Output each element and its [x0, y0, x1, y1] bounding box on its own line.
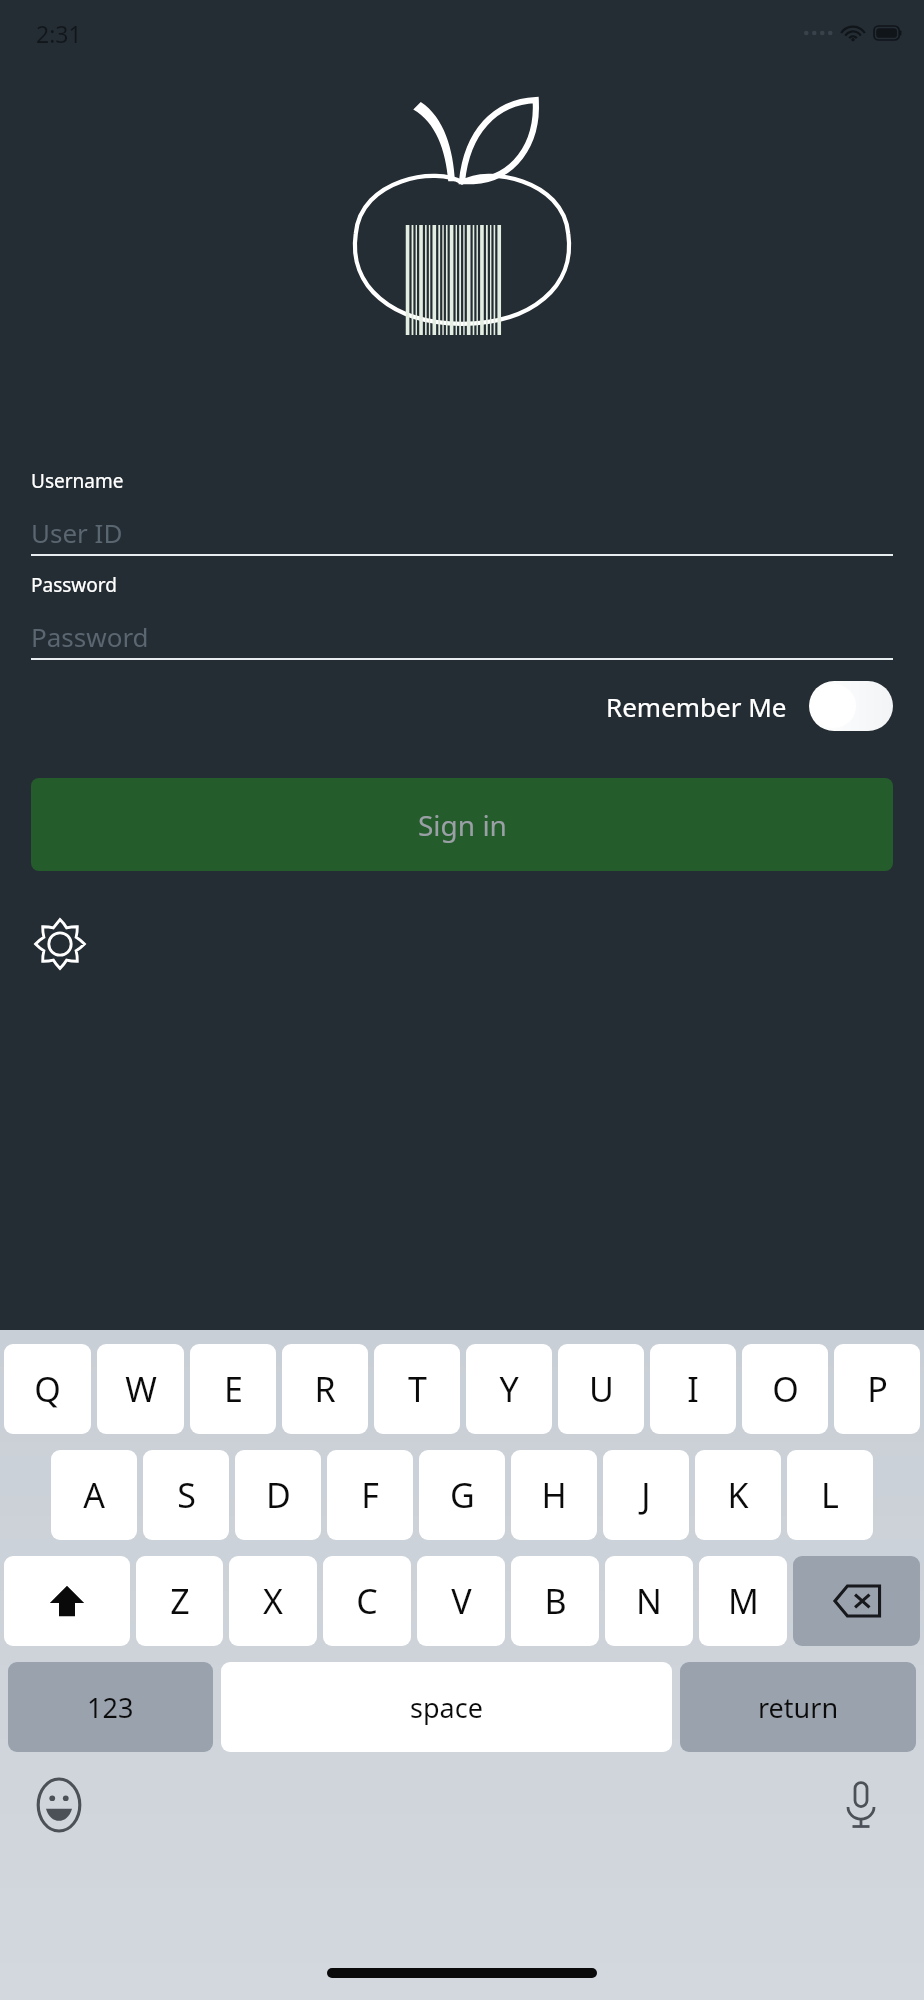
button[interactable]: U	[558, 1344, 644, 1434]
button[interactable]: User ID	[31, 510, 893, 554]
staticText: I	[687, 1366, 699, 1412]
staticText: D	[266, 1472, 291, 1518]
button[interactable]: L	[787, 1450, 873, 1540]
staticText: Sign in	[418, 806, 507, 844]
button[interactable]: Sign in	[31, 778, 893, 871]
button[interactable]: H	[511, 1450, 597, 1540]
button[interactable]: S	[143, 1450, 229, 1540]
button[interactable]: X	[229, 1556, 317, 1646]
staticText: W	[125, 1366, 157, 1412]
button[interactable]: E	[190, 1344, 276, 1434]
staticText: O	[772, 1366, 799, 1412]
staticText: 123	[87, 1689, 134, 1726]
staticText: E	[224, 1366, 243, 1412]
staticText: B	[544, 1578, 567, 1624]
button[interactable]: Q	[4, 1344, 91, 1434]
button[interactable]: I	[650, 1344, 736, 1434]
staticText: 2:31	[36, 18, 82, 49]
button[interactable]: J	[603, 1450, 689, 1540]
button[interactable]: W	[97, 1344, 184, 1434]
staticText: Password	[31, 572, 117, 598]
button[interactable]: R	[282, 1344, 368, 1434]
button[interactable]: Dictation	[832, 1776, 890, 1834]
staticText: J	[641, 1472, 651, 1518]
staticText: Remember Me	[606, 689, 787, 724]
staticText: A	[83, 1472, 105, 1518]
button[interactable]: return	[680, 1662, 916, 1752]
staticText: Z	[170, 1578, 190, 1624]
button[interactable]: space	[221, 1662, 672, 1752]
button[interactable]: A	[51, 1450, 137, 1540]
button[interactable]: P	[834, 1344, 920, 1434]
staticText: U	[589, 1366, 614, 1412]
button[interactable]: Backspace	[793, 1556, 920, 1646]
staticText: N	[636, 1578, 662, 1624]
button[interactable]: Settings	[31, 915, 89, 973]
staticText: return	[758, 1689, 839, 1726]
button[interactable]: Z	[136, 1556, 223, 1646]
button[interactable]: K	[695, 1450, 781, 1540]
staticText: F	[361, 1472, 379, 1518]
button[interactable]: F	[327, 1450, 413, 1540]
staticText: H	[541, 1472, 567, 1518]
staticText: Q	[34, 1366, 61, 1412]
staticText: C	[356, 1578, 378, 1624]
button[interactable]: Password	[31, 614, 893, 658]
button[interactable]: V	[417, 1556, 505, 1646]
staticText: X	[263, 1578, 283, 1624]
staticText: Y	[499, 1366, 519, 1412]
staticText: V	[451, 1578, 472, 1624]
staticText: User ID	[31, 515, 123, 550]
staticText: P	[867, 1366, 888, 1412]
staticText: Username	[31, 468, 124, 494]
button[interactable]: C	[323, 1556, 411, 1646]
button[interactable]: G	[419, 1450, 505, 1540]
button[interactable]: O	[742, 1344, 828, 1434]
button[interactable]: B	[511, 1556, 599, 1646]
staticText: K	[727, 1472, 749, 1518]
button[interactable]: 123	[8, 1662, 213, 1752]
button[interactable]: M	[699, 1556, 787, 1646]
button[interactable]: T	[374, 1344, 460, 1434]
staticText: L	[821, 1472, 839, 1518]
button[interactable]: Remember Me	[31, 678, 893, 734]
staticText: Password	[31, 619, 149, 654]
staticText: R	[314, 1366, 336, 1412]
button[interactable]: D	[235, 1450, 321, 1540]
staticText: G	[450, 1472, 475, 1518]
staticText: M	[728, 1578, 759, 1624]
button[interactable]: N	[605, 1556, 693, 1646]
staticText: space	[410, 1689, 483, 1726]
button[interactable]: Shift	[4, 1556, 130, 1646]
button[interactable]: Emoji	[30, 1776, 88, 1834]
staticText: S	[177, 1472, 196, 1518]
staticText: T	[408, 1366, 427, 1412]
button[interactable]: Y	[466, 1344, 552, 1434]
